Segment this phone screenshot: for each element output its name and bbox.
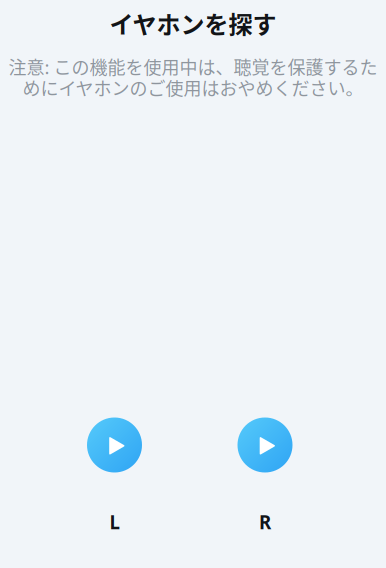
staticText: R	[259, 510, 271, 534]
staticText: 注意: この機能を使用中は、聴覚を保護するた	[8, 53, 377, 80]
staticText: L	[109, 510, 119, 534]
staticText: めにイヤホンのご使用はおやめください。	[22, 74, 363, 101]
button[interactable]: Play sound in right earbud	[237, 417, 292, 472]
button[interactable]: Play sound in left earbud	[87, 417, 142, 472]
staticText: イヤホンを探す	[109, 6, 276, 40]
